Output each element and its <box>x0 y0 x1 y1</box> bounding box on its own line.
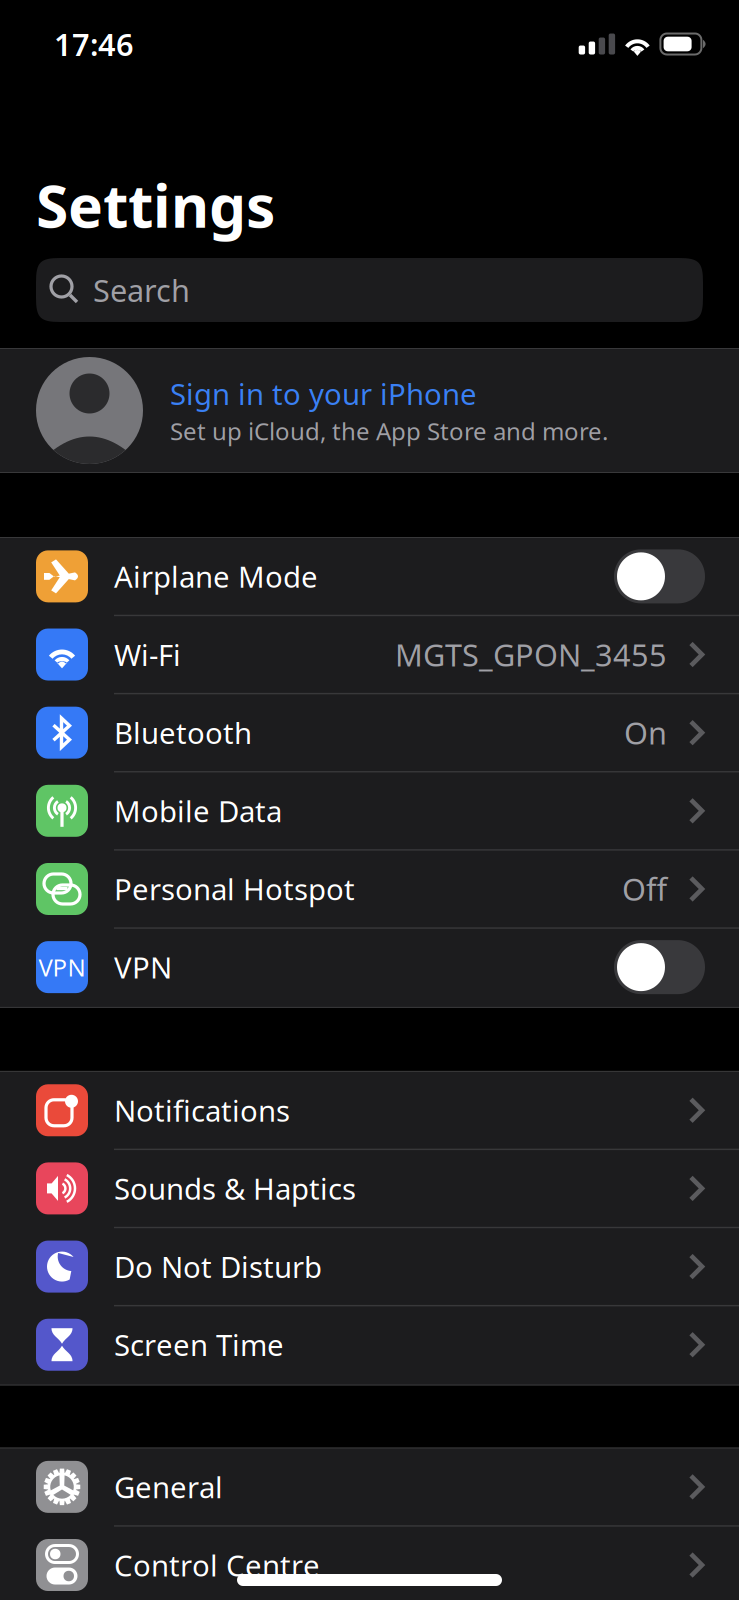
staticText: Sounds & Haptics <box>114 1169 356 1208</box>
button[interactable]: Wi-Fi <box>0 616 739 694</box>
staticText: Screen Time <box>114 1325 284 1364</box>
staticText: General <box>114 1467 223 1506</box>
button[interactable]: General <box>0 1448 739 1527</box>
staticText: Mobile Data <box>114 791 282 830</box>
staticText: Do Not Disturb <box>114 1247 322 1286</box>
button[interactable]: Search <box>36 258 703 322</box>
button[interactable]: Airplane Mode <box>0 538 739 616</box>
button[interactable]: Notifications <box>0 1072 739 1150</box>
button[interactable]: VPN <box>0 929 739 1007</box>
button[interactable]: Bluetooth <box>0 694 739 772</box>
staticText: Control Centre <box>114 1545 320 1584</box>
staticText: VPN <box>114 948 172 987</box>
staticText: Bluetooth <box>114 713 252 752</box>
button[interactable]: Mobile Data <box>0 772 739 851</box>
staticText: Wi-Fi <box>114 635 181 674</box>
staticText: Sign in to your iPhone <box>170 374 477 413</box>
staticText: VPN <box>38 951 85 983</box>
staticText: Settings <box>36 166 275 244</box>
staticText: Personal Hotspot <box>114 869 355 908</box>
staticText: On <box>624 712 667 753</box>
staticText: Airplane Mode <box>114 557 318 596</box>
staticText: 17:46 <box>54 24 134 64</box>
staticText: Search <box>93 270 190 310</box>
button[interactable]: Sounds & Haptics <box>0 1150 739 1228</box>
button[interactable]: Personal Hotspot <box>0 851 739 929</box>
button[interactable]: Sign in to your iPhone <box>0 348 739 473</box>
staticText: MGTS_GPON_3455 <box>395 634 667 675</box>
button[interactable]: Do Not Disturb <box>0 1228 739 1306</box>
staticText: Notifications <box>114 1091 290 1130</box>
staticText: Off <box>622 869 667 909</box>
button[interactable]: Screen Time <box>0 1306 739 1385</box>
button[interactable]: Control Centre <box>0 1527 739 1600</box>
staticText: Set up iCloud, the App Store and more. <box>170 415 608 447</box>
